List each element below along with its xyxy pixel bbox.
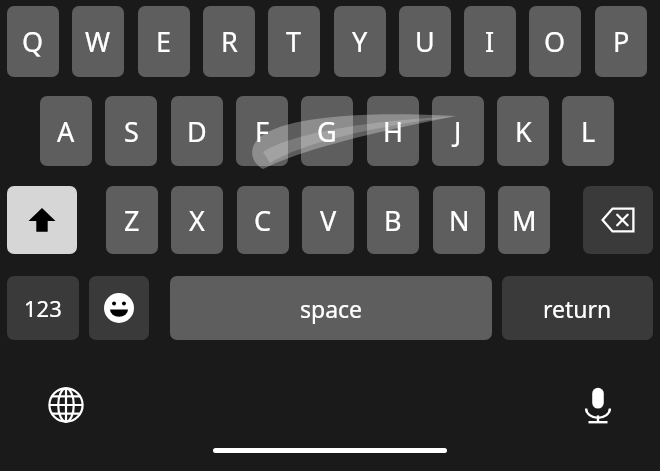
button[interactable]: N	[433, 186, 485, 254]
button[interactable]: K	[497, 96, 549, 166]
button[interactable]: Shift	[7, 186, 77, 254]
staticText: U	[415, 23, 435, 60]
staticText: M	[512, 202, 537, 239]
button[interactable]: A	[40, 96, 92, 166]
button[interactable]: Z	[106, 186, 158, 254]
staticText: L	[581, 113, 596, 150]
staticText: space	[300, 293, 363, 324]
staticText: return	[543, 293, 612, 324]
button[interactable]: P	[595, 6, 647, 77]
button[interactable]: space	[170, 276, 492, 340]
button[interactable]: 123	[7, 276, 79, 340]
button[interactable]: Voice input	[572, 379, 624, 431]
button[interactable]: E	[138, 6, 190, 77]
button[interactable]: V	[302, 186, 354, 254]
button[interactable]: O	[529, 6, 581, 77]
staticText: K	[515, 113, 532, 150]
staticText: 123	[24, 293, 62, 323]
button[interactable]: J	[432, 96, 484, 166]
button[interactable]: S	[105, 96, 157, 166]
button[interactable]: W	[72, 6, 124, 77]
staticText: F	[255, 113, 270, 150]
staticText: O	[544, 23, 566, 60]
staticText: S	[124, 113, 139, 150]
staticText: D	[187, 113, 207, 150]
staticText: W	[85, 23, 111, 60]
staticText: Y	[352, 23, 368, 60]
button[interactable]: Emoji	[89, 276, 149, 340]
button[interactable]: M	[498, 186, 550, 254]
staticText: A	[57, 113, 75, 150]
button[interactable]: T	[268, 6, 320, 77]
staticText: J	[454, 113, 462, 150]
button[interactable]: R	[203, 6, 255, 77]
staticText: P	[613, 23, 630, 60]
staticText: C	[254, 202, 272, 239]
button[interactable]: X	[171, 186, 223, 254]
staticText: Q	[22, 23, 44, 60]
staticText: N	[449, 202, 470, 239]
staticText: H	[383, 113, 404, 150]
staticText: X	[189, 202, 205, 239]
button[interactable]: Q	[7, 6, 59, 77]
button[interactable]: F	[236, 96, 288, 166]
button[interactable]: return	[502, 276, 653, 340]
staticText: E	[156, 23, 172, 60]
staticText: V	[320, 202, 337, 239]
button[interactable]: H	[367, 96, 419, 166]
button[interactable]: L	[562, 96, 614, 166]
button[interactable]: D	[171, 96, 223, 166]
staticText: R	[221, 23, 238, 60]
staticText: G	[317, 113, 337, 150]
staticText: I	[485, 23, 495, 60]
staticText: T	[286, 23, 302, 60]
button[interactable]: G	[301, 96, 353, 166]
button[interactable]: C	[237, 186, 289, 254]
staticText: Z	[124, 202, 140, 239]
button[interactable]: B	[367, 186, 419, 254]
button[interactable]: Y	[334, 6, 386, 77]
staticText: B	[384, 202, 402, 239]
button[interactable]: U	[399, 6, 451, 77]
button[interactable]: I	[464, 6, 516, 77]
button[interactable]: Change keyboard	[40, 379, 92, 431]
button[interactable]: Backspace	[583, 186, 653, 254]
